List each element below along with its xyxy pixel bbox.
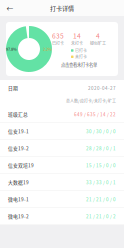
button[interactable]: 信安19-2 <box>0 140 124 157</box>
button[interactable]: 大数据19 <box>0 174 124 191</box>
staticText: 已打卡 <box>52 40 64 46</box>
staticText: 2.2% <box>43 46 52 52</box>
staticText: 14 <box>73 31 81 40</box>
staticText: 大数据19 <box>8 179 29 186</box>
staticText: 未打卡 <box>75 54 87 60</box>
button[interactable]: 微电19-1 <box>0 191 124 208</box>
button[interactable]: 微电19-2 <box>0 208 124 225</box>
staticText: 微电19-2 <box>8 213 29 220</box>
staticText: 疑似旷工 <box>90 40 106 46</box>
staticText: 班级汇总 <box>8 111 28 118</box>
staticText: 信安19-2 <box>8 145 29 152</box>
staticText: 点击查看未打卡名单 <box>61 61 97 67</box>
staticText: 649 / 635 / 14 / 22 <box>74 111 116 118</box>
button[interactable]: 信安19-1 <box>0 123 124 140</box>
button[interactable]: 班级汇总 <box>0 106 124 123</box>
staticText: 28 / 28 / 0 / 1 <box>86 145 116 152</box>
staticText: 总人数/应打卡/未打卡/旷工 <box>66 98 116 104</box>
staticText: 已打卡 <box>75 48 87 53</box>
staticText: 2020-04-27 <box>88 85 116 91</box>
staticText: 信安19-1 <box>8 128 29 135</box>
staticText: 21 / 21 / 0 / 0 <box>86 196 116 203</box>
staticText: 信安双培19 <box>8 162 34 169</box>
staticText: 21 / 21 / 0 / 2 <box>86 213 116 220</box>
staticText: 微电19-1 <box>8 196 29 203</box>
staticText: 日期 <box>8 84 18 91</box>
staticText: 4 <box>96 31 100 40</box>
staticText: 未打卡 <box>71 40 83 46</box>
staticText: 30 / 30 / 0 / 0 <box>86 128 116 135</box>
staticText: 635 <box>52 31 64 40</box>
staticText: 打卡详情 <box>50 4 74 12</box>
staticText: 15 / 15 / 0 / 0 <box>86 162 116 169</box>
staticText: 97.8% <box>6 46 17 52</box>
button[interactable]: 信安双培19 <box>0 157 124 174</box>
staticText: 33 / 33 / 0 / 1 <box>86 179 116 186</box>
button[interactable]: Back <box>4 2 16 14</box>
staticText: ← <box>6 3 13 13</box>
